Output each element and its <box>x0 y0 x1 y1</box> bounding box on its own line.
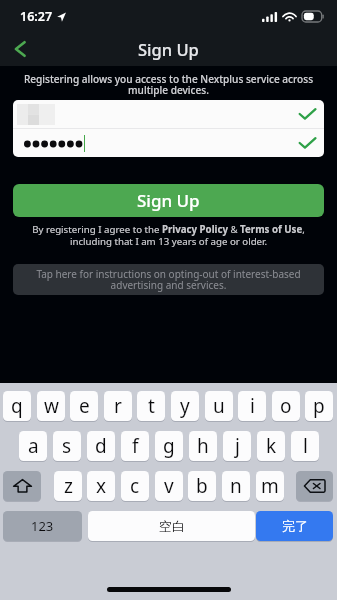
button[interactable]: p <box>305 391 333 421</box>
button[interactable]: u <box>205 391 233 421</box>
staticText: 123 <box>31 517 54 535</box>
button[interactable]: s <box>53 431 81 461</box>
staticText: c <box>130 473 140 499</box>
staticText: By registering I agree to the Privacy Po… <box>10 223 327 248</box>
staticText: t <box>148 393 155 419</box>
button[interactable]: r <box>104 391 132 421</box>
button[interactable]: v <box>155 471 183 501</box>
staticText: v <box>164 473 174 499</box>
button[interactable]: t <box>137 391 165 421</box>
staticText: Sign Up <box>138 38 199 60</box>
button[interactable]: Tap here for instructions on opting-out … <box>13 264 324 295</box>
button[interactable]: h <box>189 431 217 461</box>
button[interactable]: b <box>188 471 216 501</box>
button[interactable]: d <box>87 431 115 461</box>
staticText: y <box>180 393 190 419</box>
button[interactable]: w <box>37 391 65 421</box>
staticText: 空白 <box>159 518 185 534</box>
button[interactable]: f <box>121 431 149 461</box>
staticText: s <box>62 433 72 459</box>
staticText: 完了 <box>282 518 308 534</box>
button[interactable]: l <box>291 431 319 461</box>
staticText: n <box>230 473 242 499</box>
button[interactable] <box>13 129 324 157</box>
staticText: u <box>213 393 225 419</box>
button[interactable]: e <box>70 391 98 421</box>
button[interactable]: j <box>223 431 251 461</box>
button[interactable]: i <box>238 391 266 421</box>
staticText: h <box>197 433 209 459</box>
button[interactable]: a <box>19 431 47 461</box>
staticText: f <box>132 433 139 459</box>
button[interactable]: Back <box>0 32 40 66</box>
button[interactable]: m <box>256 471 284 501</box>
staticText: g <box>163 433 175 459</box>
staticText: Registering allows you access to the Nex… <box>10 72 327 97</box>
staticText: d <box>95 433 107 459</box>
button[interactable]: o <box>272 391 300 421</box>
staticText: a <box>28 433 39 459</box>
staticText: x <box>96 473 107 499</box>
button[interactable]: g <box>155 431 183 461</box>
button[interactable]: Numbers <box>3 511 82 541</box>
staticText: w <box>44 393 59 419</box>
button[interactable]: c <box>121 471 149 501</box>
staticText: l <box>303 433 308 459</box>
staticText: p <box>313 393 325 419</box>
button[interactable]: z <box>54 471 82 501</box>
staticText: z <box>64 473 73 499</box>
button[interactable]: q <box>3 391 31 421</box>
staticText: 16:27 <box>20 8 53 25</box>
button[interactable]: n <box>222 471 250 501</box>
button[interactable]: Shift <box>3 471 41 501</box>
button[interactable]: 完了 <box>256 511 333 541</box>
staticText: o <box>280 393 292 419</box>
staticText: k <box>266 433 277 459</box>
button[interactable]: x <box>87 471 115 501</box>
staticText: q <box>11 393 23 419</box>
button[interactable]: Backspace <box>296 471 333 501</box>
button[interactable]: y <box>171 391 199 421</box>
staticText: r <box>114 393 122 419</box>
staticText: Sign Up <box>137 189 200 212</box>
staticText: j <box>235 433 240 459</box>
staticText: b <box>196 473 208 499</box>
staticText: e <box>79 393 90 419</box>
staticText: m <box>261 473 279 499</box>
staticText: Tap here for instructions on opting-out … <box>36 267 301 292</box>
button[interactable]: 空白 <box>88 511 255 541</box>
button[interactable]: Sign Up <box>13 184 324 217</box>
button[interactable]: k <box>257 431 285 461</box>
staticText: i <box>250 393 255 419</box>
button[interactable] <box>13 100 324 128</box>
